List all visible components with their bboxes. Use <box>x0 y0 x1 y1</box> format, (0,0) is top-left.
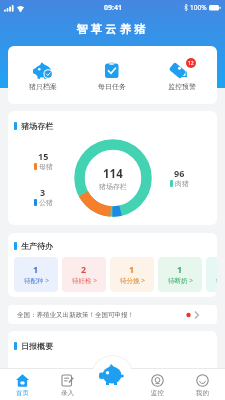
button[interactable]: 1 <box>14 257 58 292</box>
staticText: 猪场存栏 <box>21 121 53 131</box>
staticText: 96 <box>174 167 185 179</box>
staticText: 15 <box>38 150 49 162</box>
button[interactable]: 首页 <box>0 368 45 400</box>
staticText: 待配种 > <box>24 276 49 285</box>
staticText: 肉猪 <box>175 179 189 188</box>
staticText: 我的 <box>196 389 209 397</box>
staticText: 3 <box>40 186 46 198</box>
staticText: 监控 <box>151 389 164 397</box>
staticText: 日报概要 <box>21 341 53 351</box>
button[interactable]: 猪只档案 <box>8 46 77 104</box>
staticText: 1 <box>177 263 183 275</box>
button[interactable]: 我的 <box>180 368 225 400</box>
staticText: 待分娩 > <box>120 276 145 285</box>
staticText: 生产待办 <box>21 241 53 251</box>
staticText: 09:41 <box>104 3 122 13</box>
button[interactable]: 每日任务 <box>77 46 147 104</box>
button[interactable]: 监控 <box>135 368 180 400</box>
staticText: 录入 <box>61 389 74 397</box>
button[interactable]: 2 <box>62 257 106 292</box>
staticText: 猪场存栏 <box>99 182 127 191</box>
staticText: 待妊检 > <box>72 276 97 285</box>
staticText: 1 <box>129 263 135 275</box>
staticText: 1 <box>33 263 39 275</box>
staticText: 100% <box>190 3 207 12</box>
button[interactable]: 1 <box>110 257 154 292</box>
staticText: 全国：养殖业又出新政策！全国可申报！ <box>17 311 134 319</box>
staticText: 待出栏 > <box>216 276 217 285</box>
staticText: 每日任务 <box>98 82 126 91</box>
staticText: 待断奶 > <box>168 276 193 285</box>
staticText: 2 <box>81 263 87 275</box>
staticText: 公猪 <box>39 198 53 207</box>
staticText: 猪只档案 <box>29 82 57 91</box>
staticText: 首页 <box>16 389 29 397</box>
button[interactable] <box>92 356 133 397</box>
staticText: 12 <box>188 60 194 67</box>
button[interactable]: 4 <box>206 257 217 292</box>
staticText: 监控预警 <box>168 82 196 91</box>
button[interactable]: 录入 <box>45 368 90 400</box>
staticText: 母猪 <box>39 162 53 171</box>
button[interactable]: 全国：养殖业又出新政策！全国可申报！ <box>8 305 217 324</box>
button[interactable]: 12 <box>147 46 217 104</box>
button[interactable]: 1 <box>158 257 202 292</box>
staticText: 智草云养猪 <box>0 22 225 36</box>
staticText: 114 <box>103 166 123 182</box>
